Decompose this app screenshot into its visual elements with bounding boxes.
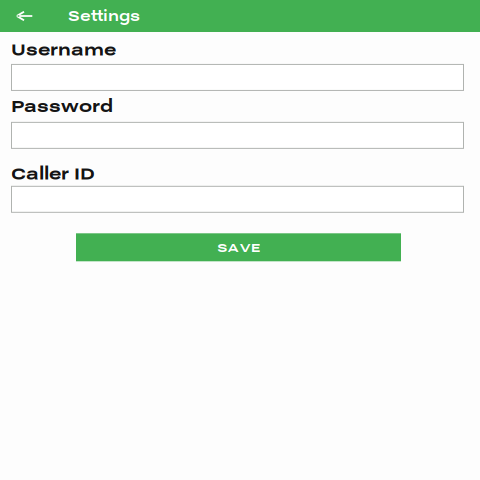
- button[interactable]: SAVE: [76, 233, 401, 261]
- staticText: Settings: [68, 5, 140, 25]
- staticText: Password: [11, 93, 113, 117]
- button[interactable]: Settings: [53, 0, 140, 32]
- staticText: SAVE: [217, 238, 260, 255]
- button[interactable]: Navigate up: [0, 0, 53, 32]
- staticText: Username: [11, 37, 116, 60]
- staticText: Caller ID: [11, 161, 95, 184]
